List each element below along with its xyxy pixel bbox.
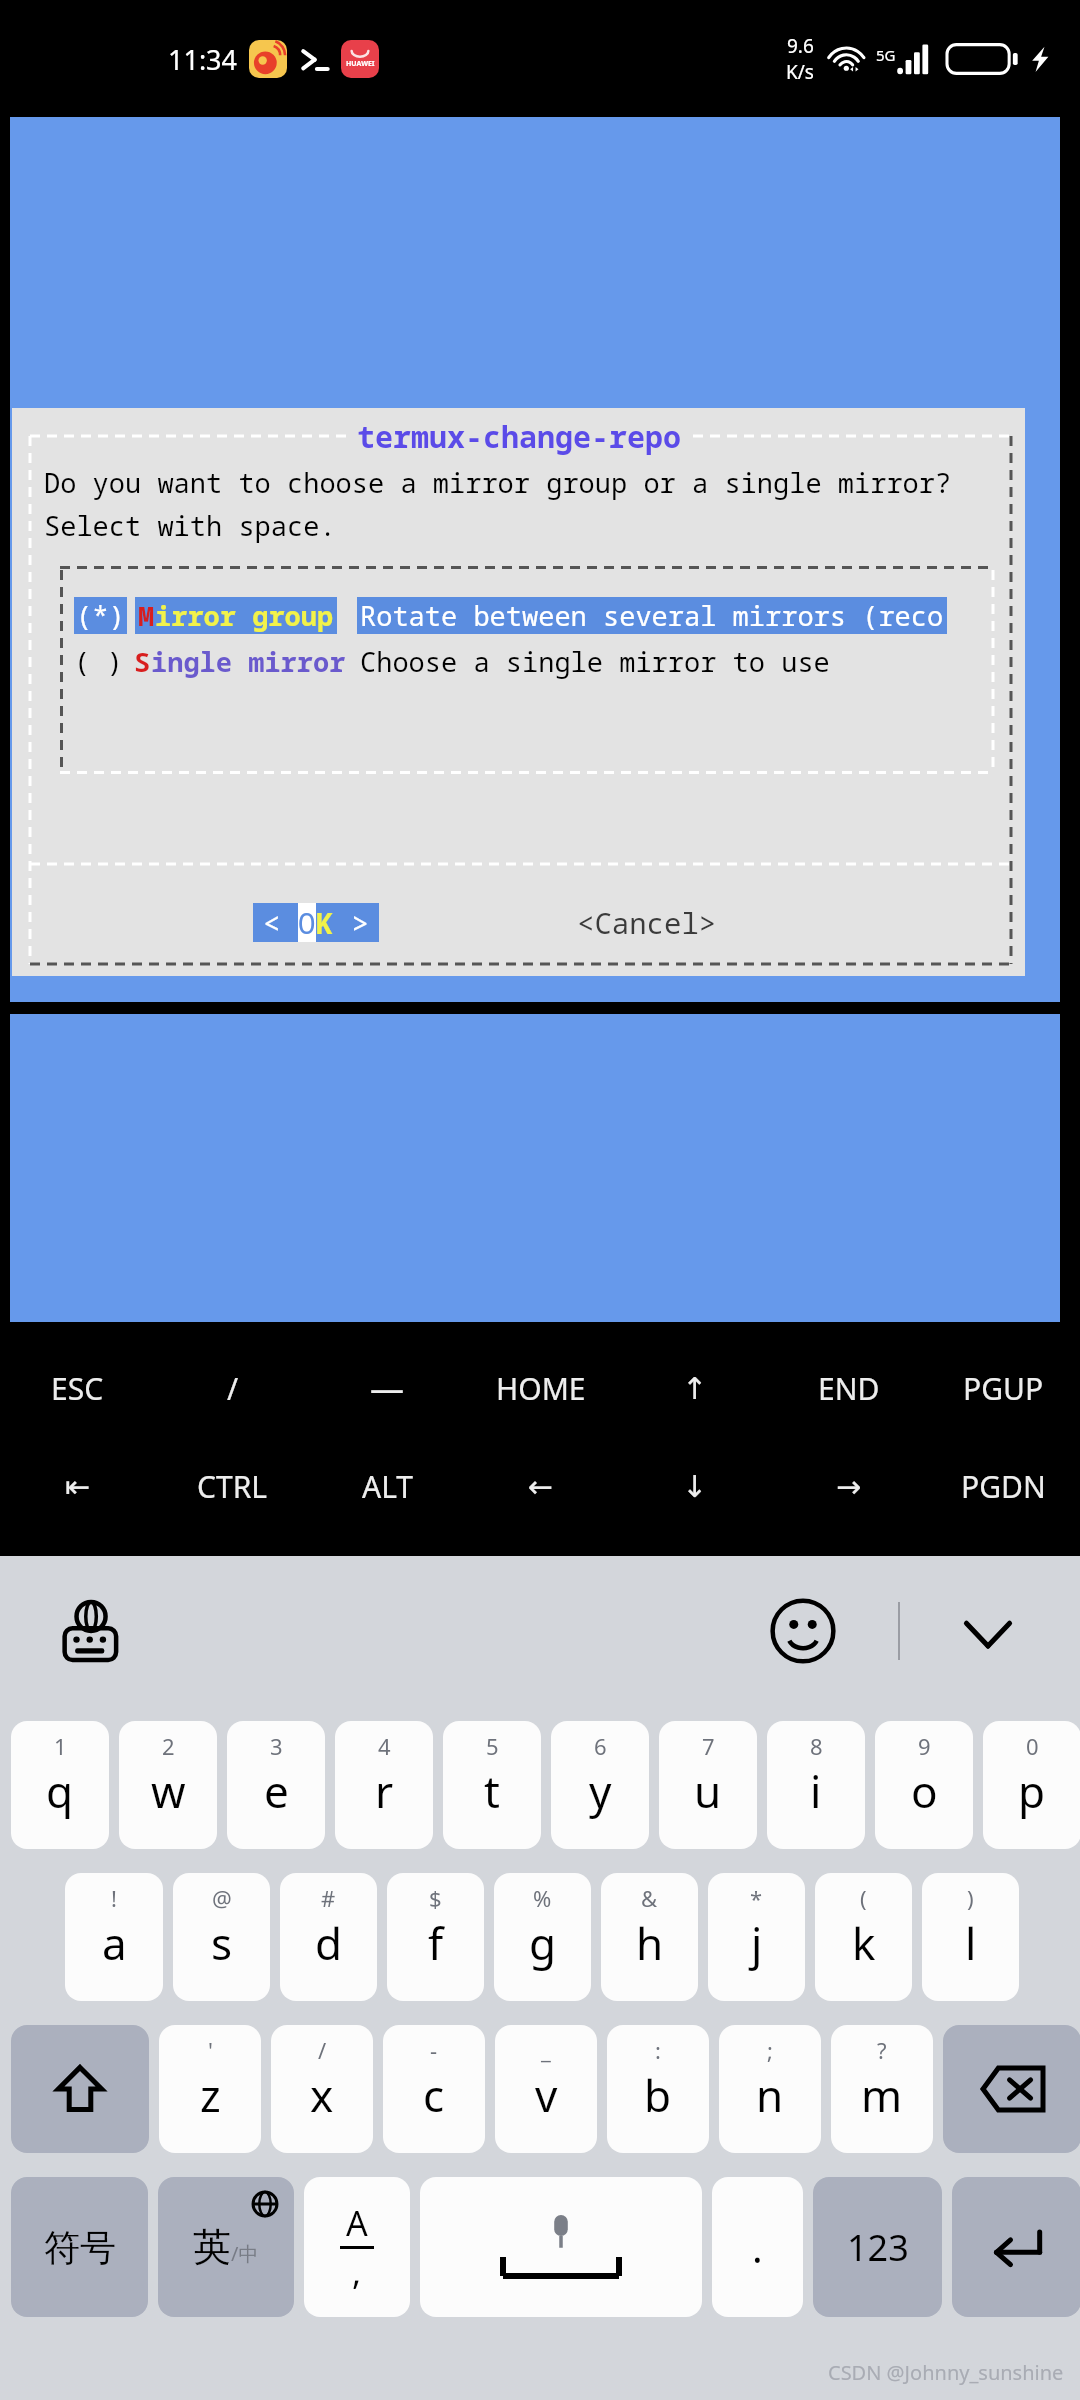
button[interactable]: Emoji (770, 1598, 836, 1664)
button[interactable]: ↓ (618, 1440, 772, 1532)
staticText: x (310, 2065, 334, 2125)
button[interactable]: — (310, 1342, 464, 1434)
button[interactable]: - (383, 2025, 485, 2153)
button[interactable]: _ (495, 2025, 597, 2153)
button[interactable]: Hide keyboard (958, 1604, 1018, 1664)
staticText: CSDN @Johnny_sunshine (828, 2359, 1064, 2386)
button[interactable]: 5 (443, 1721, 541, 1849)
staticText: . (752, 2220, 763, 2274)
button[interactable]: ( (815, 1873, 912, 2001)
staticText: S (134, 643, 151, 680)
button[interactable]: → (772, 1440, 926, 1532)
staticText: Rotate between several mirrors (reco (360, 597, 944, 634)
button[interactable]: END (772, 1342, 926, 1434)
staticText: q (46, 1761, 74, 1821)
staticText: m (861, 2065, 903, 2125)
button[interactable]: Shift (11, 2025, 149, 2153)
staticText: 7 (702, 1731, 715, 1761)
staticText: v (535, 2065, 558, 2125)
button[interactable]: % (494, 1873, 591, 2001)
staticText: ) (967, 1883, 974, 1913)
button[interactable]: ? (831, 2025, 933, 2153)
button[interactable]: ⇤ (0, 1440, 155, 1532)
staticText: ESC (51, 1368, 104, 1409)
button[interactable]: 符号 (11, 2177, 148, 2317)
staticText: ! (111, 1883, 117, 1913)
button[interactable]: ESC (0, 1342, 155, 1434)
button[interactable]: @ (173, 1873, 270, 2001)
button[interactable]: ! (65, 1873, 163, 2001)
staticText: 4 (378, 1731, 391, 1761)
button[interactable]: A (304, 2177, 410, 2317)
staticText: — (370, 1365, 404, 1411)
staticText: : (655, 2035, 661, 2065)
staticText: termux-change-repo (357, 416, 681, 457)
staticText: / (227, 1368, 239, 1409)
button[interactable]: ; (719, 2025, 821, 2153)
button[interactable]: . (712, 2177, 803, 2317)
staticText: y (589, 1761, 612, 1821)
button[interactable]: ) (922, 1873, 1019, 2001)
staticText: 英 (193, 2223, 231, 2271)
button[interactable]: ← (464, 1440, 618, 1532)
staticText: K (316, 903, 334, 942)
button[interactable]: 6 (551, 1721, 649, 1849)
button[interactable]: 英 (158, 2177, 294, 2317)
staticText: # (321, 1883, 336, 1913)
staticText: b (644, 2065, 672, 2125)
staticText: , (352, 2249, 362, 2295)
staticText: 5G (876, 45, 896, 65)
staticText: p (1018, 1761, 1046, 1821)
button[interactable]: 7 (659, 1721, 757, 1849)
staticText: t (484, 1761, 500, 1821)
staticText: ' (208, 2035, 213, 2065)
button[interactable]: & (601, 1873, 698, 2001)
button[interactable]: / (155, 1342, 310, 1434)
button[interactable]: Input languages (62, 1598, 128, 1664)
button[interactable]: Enter (952, 2177, 1080, 2317)
button[interactable]: 9 (875, 1721, 973, 1849)
staticText: k (852, 1913, 876, 1973)
staticText: 1 (54, 1731, 67, 1761)
button[interactable]: PGUP (926, 1342, 1080, 1434)
staticText: <Cancel> (577, 903, 717, 942)
button[interactable]: Backspace (943, 2025, 1080, 2153)
button[interactable]: ↑ (618, 1342, 772, 1434)
staticText: 8 (810, 1731, 823, 1761)
staticText: 9.6 (787, 33, 814, 59)
staticText: a (102, 1913, 127, 1973)
button[interactable]: HOME (464, 1342, 618, 1434)
staticText: 5 (486, 1731, 499, 1761)
button[interactable]: < (253, 903, 379, 942)
button[interactable]: 4 (335, 1721, 433, 1849)
staticText: END (818, 1368, 880, 1409)
button[interactable]: # (280, 1873, 377, 2001)
button[interactable]: CTRL (155, 1440, 310, 1532)
staticText: 123 (847, 2223, 909, 2272)
button[interactable]: 8 (767, 1721, 865, 1849)
button[interactable]: PGDN (926, 1440, 1080, 1532)
button[interactable]: ( ) (74, 638, 830, 684)
staticText: ← (528, 1469, 554, 1504)
button[interactable]: 1 (11, 1721, 109, 1849)
button[interactable]: (*) (74, 592, 947, 638)
button[interactable]: <Cancel> (569, 899, 725, 946)
button[interactable]: $ (387, 1873, 484, 2001)
button[interactable]: 123 (813, 2177, 942, 2317)
staticText: o (911, 1761, 938, 1821)
button[interactable]: * (708, 1873, 805, 2001)
staticText: > (334, 903, 369, 942)
staticText: ; (767, 2035, 773, 2065)
staticText: g (529, 1913, 557, 1973)
button[interactable]: : (607, 2025, 709, 2153)
staticText: (*) (76, 597, 125, 634)
button[interactable]: 2 (119, 1721, 217, 1849)
staticText: h (636, 1913, 664, 1973)
button[interactable]: ALT (310, 1440, 464, 1532)
button[interactable]: Space (420, 2177, 702, 2317)
button[interactable]: 0 (983, 1721, 1080, 1849)
button[interactable]: ' (159, 2025, 261, 2153)
button[interactable]: 3 (227, 1721, 325, 1849)
button[interactable]: / (271, 2025, 373, 2153)
staticText: < (263, 903, 298, 942)
